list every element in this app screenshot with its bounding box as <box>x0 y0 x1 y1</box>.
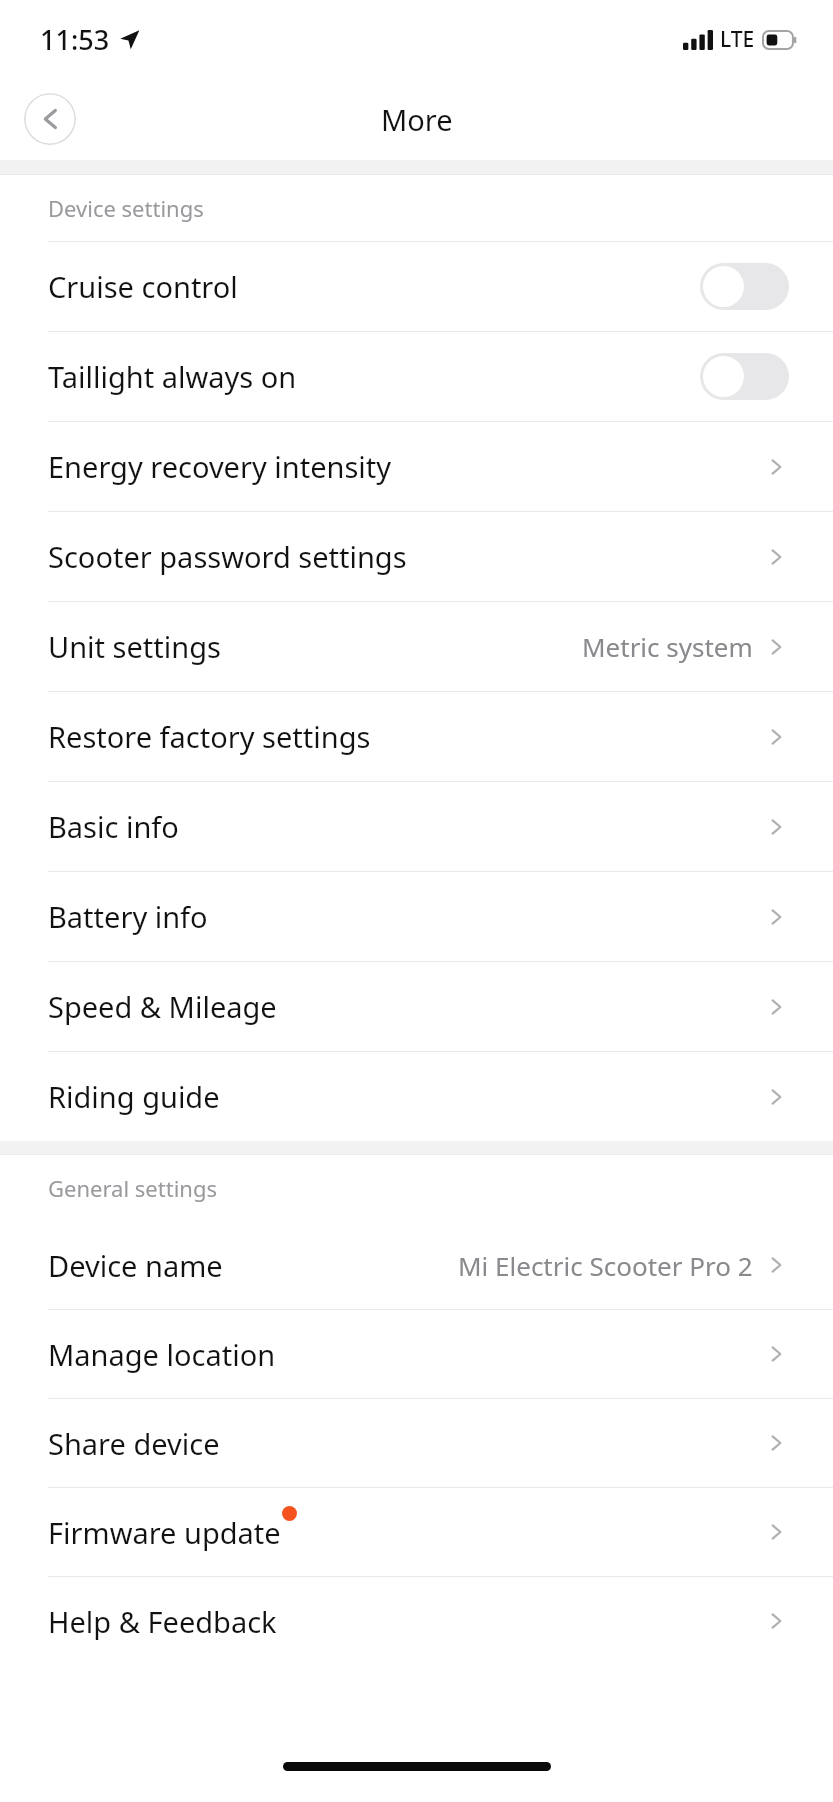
button[interactable]: Scooter password settings <box>0 512 833 601</box>
button[interactable]: Unit settings <box>0 602 833 691</box>
staticText: Taillight always on <box>48 357 297 396</box>
staticText: Restore factory settings <box>48 717 371 756</box>
staticText: Firmware update <box>48 1513 281 1552</box>
button[interactable]: Cruise control <box>0 242 833 331</box>
staticText: Metric system <box>582 629 753 664</box>
staticText: Manage location <box>48 1335 276 1374</box>
staticText: Battery info <box>48 897 208 936</box>
button[interactable]: Taillight always on <box>0 332 833 421</box>
button[interactable]: Share device <box>0 1399 833 1487</box>
button[interactable]: Toggle <box>700 353 789 400</box>
staticText: Energy recovery intensity <box>48 447 392 486</box>
staticText: Speed & Mileage <box>48 987 277 1026</box>
staticText: Device settings <box>48 193 204 223</box>
staticText: Scooter password settings <box>48 537 407 576</box>
button[interactable]: Manage location <box>0 1310 833 1398</box>
staticText: Mi Electric Scooter Pro 2 <box>458 1248 753 1283</box>
button[interactable]: Speed & Mileage <box>0 962 833 1051</box>
staticText: LTE <box>720 25 755 54</box>
staticText: Device name <box>48 1246 223 1285</box>
button[interactable]: Back <box>24 93 76 145</box>
staticText: Cruise control <box>48 267 238 306</box>
button[interactable]: Basic info <box>0 782 833 871</box>
button[interactable]: Riding guide <box>0 1052 833 1141</box>
staticText: More <box>381 100 453 139</box>
button[interactable]: Device name <box>0 1221 833 1309</box>
staticText: Basic info <box>48 807 179 846</box>
button[interactable]: Toggle <box>700 263 789 310</box>
button[interactable]: Restore factory settings <box>0 692 833 781</box>
staticText: Help & Feedback <box>48 1602 277 1641</box>
button[interactable]: Help & Feedback <box>0 1577 833 1665</box>
button[interactable]: Energy recovery intensity <box>0 422 833 511</box>
staticText: Share device <box>48 1424 220 1463</box>
button[interactable]: Battery info <box>0 872 833 961</box>
staticText: Riding guide <box>48 1077 220 1116</box>
staticText: General settings <box>48 1173 217 1203</box>
button[interactable]: Firmware update <box>0 1488 833 1576</box>
staticText: 11:53 <box>40 21 110 58</box>
staticText: Unit settings <box>48 627 221 666</box>
